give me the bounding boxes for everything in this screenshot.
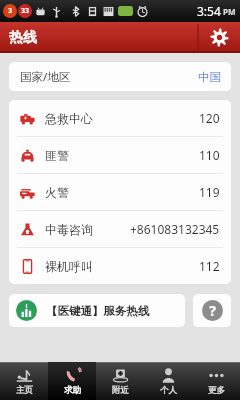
button[interactable]: 更多 (192, 362, 240, 400)
staticText: 33 (21, 6, 30, 16)
button[interactable]: Help (193, 294, 231, 327)
staticText: 更多 (208, 385, 225, 396)
button[interactable]: 急救中心 (9, 100, 231, 136)
staticText: 中毒咨询 (45, 222, 93, 237)
button[interactable]: 【医键通】服务热线 (9, 294, 185, 327)
staticText: ? (209, 301, 216, 320)
staticText: 中国 (198, 70, 221, 84)
staticText: 匪警 (45, 148, 69, 163)
button[interactable]: 主页 (0, 362, 48, 400)
staticText: 3:54 (197, 3, 221, 19)
button[interactable]: Settings (198, 22, 240, 53)
button[interactable]: 附近 (96, 362, 144, 400)
staticText: 【医键通】服务热线 (46, 304, 150, 318)
staticText: 求助 (64, 385, 81, 396)
button[interactable]: 个人 (144, 362, 192, 400)
staticText: +861083132345 (130, 221, 220, 237)
staticText: 110 (199, 147, 220, 163)
staticText: PM (223, 6, 236, 17)
staticText: 裸机呼叫 (45, 259, 93, 274)
button[interactable]: 裸机呼叫 (9, 248, 231, 284)
staticText: 热线 (9, 29, 37, 47)
staticText: 主页 (16, 385, 33, 396)
button[interactable]: 匪警 (9, 137, 231, 173)
button[interactable]: 火警 (9, 174, 231, 210)
button[interactable]: 求助 (48, 362, 96, 400)
staticText: 急救中心 (45, 111, 93, 126)
staticText: 119 (199, 184, 220, 200)
staticText: 火警 (45, 185, 69, 200)
staticText: 120 (199, 110, 220, 126)
staticText: 112 (199, 258, 220, 274)
button[interactable]: 国家/地区 (9, 62, 231, 91)
staticText: 国家/地区 (20, 69, 71, 85)
staticText: 附近 (112, 385, 129, 396)
staticText: 个人 (160, 385, 177, 396)
button[interactable]: 中毒咨询 (9, 211, 231, 247)
staticText: 3 (8, 6, 13, 16)
